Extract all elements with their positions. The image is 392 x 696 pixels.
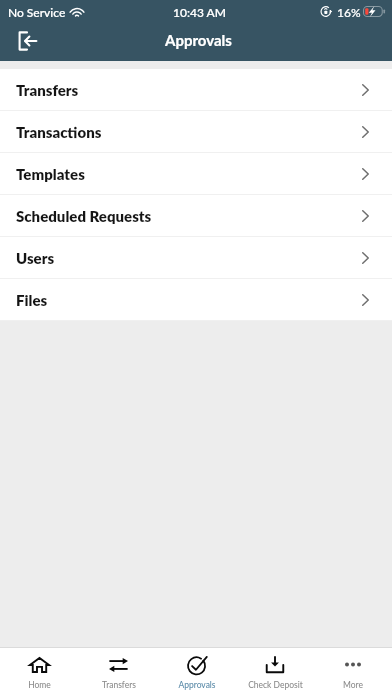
staticText: Transfers <box>102 680 136 690</box>
button[interactable]: Transfers <box>79 648 158 696</box>
staticText: 10:43 AM <box>173 5 226 19</box>
staticText: More <box>343 680 363 690</box>
button[interactable]: Transactions <box>0 111 392 152</box>
staticText: Check Deposit <box>248 680 303 690</box>
button[interactable]: Log out <box>10 24 44 58</box>
button[interactable]: Templates <box>0 153 392 194</box>
button[interactable]: Users <box>0 237 392 278</box>
button[interactable]: More <box>314 648 392 696</box>
staticText: Approvals <box>165 31 232 49</box>
staticText: Approvals <box>178 680 216 690</box>
button[interactable]: Transfers <box>0 69 392 110</box>
button[interactable]: Scheduled Requests <box>0 195 392 236</box>
staticText: Users <box>16 249 55 267</box>
button[interactable]: Files <box>0 279 392 320</box>
button[interactable]: Home <box>0 648 79 696</box>
staticText: Templates <box>16 165 85 183</box>
button[interactable]: Check Deposit <box>236 648 314 696</box>
staticText: Transfers <box>16 81 79 99</box>
staticText: Home <box>28 680 51 690</box>
staticText: Scheduled Requests <box>16 207 152 225</box>
staticText: Files <box>16 291 48 309</box>
staticText: Transactions <box>16 123 102 141</box>
staticText: No Service <box>8 5 66 19</box>
button[interactable]: Approvals <box>158 648 236 696</box>
staticText: 16% <box>337 5 361 19</box>
